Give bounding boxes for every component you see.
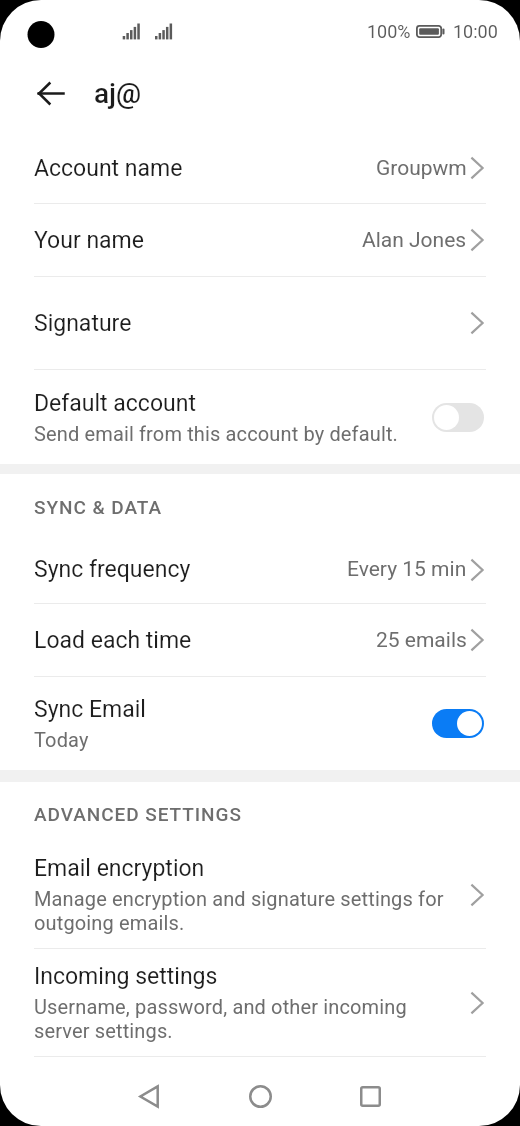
button[interactable]: Account name: [0, 133, 520, 203]
staticText: SYNC & DATA: [34, 496, 163, 518]
button[interactable]: Incoming settings: [0, 949, 520, 1056]
button[interactable]: Sync Email: [0, 677, 520, 770]
staticText: Groupwm: [376, 156, 467, 181]
button[interactable]: Your name: [0, 204, 520, 276]
button[interactable]: Sync frequency: [0, 536, 520, 603]
staticText: Send email from this account by default.: [34, 422, 398, 445]
button[interactable]: Recent apps: [339, 1066, 401, 1126]
staticText: Sync Email: [34, 696, 146, 723]
button[interactable]: Signature: [0, 277, 520, 369]
staticText: Every 15 min: [347, 557, 467, 582]
button[interactable]: Default account: [0, 370, 520, 464]
staticText: Today: [34, 728, 89, 751]
staticText: aj@: [94, 77, 142, 110]
staticText: Load each time: [34, 627, 192, 654]
staticText: Incoming settings: [34, 963, 218, 990]
button[interactable]: Load each time: [0, 604, 520, 676]
staticText: Sync frequency: [34, 556, 191, 583]
staticText: Email encryption: [34, 855, 205, 882]
staticText: 25 emails: [376, 628, 467, 653]
staticText: ADVANCED SETTINGS: [34, 803, 242, 825]
staticText: Account name: [34, 155, 183, 182]
staticText: Signature: [34, 310, 132, 337]
button[interactable]: Disabled toggle: [432, 403, 484, 432]
button[interactable]: Navigate up: [25, 67, 77, 119]
button[interactable]: Back: [118, 1066, 180, 1126]
staticText: Username, password, and other incoming s…: [34, 995, 447, 1043]
button[interactable]: Enabled toggle: [432, 709, 484, 738]
staticText: Alan Jones: [362, 228, 467, 253]
staticText: 100%: [367, 21, 411, 42]
staticText: Manage encryption and signature settings…: [34, 887, 447, 935]
staticText: Default account: [34, 390, 196, 417]
staticText: 10:00: [453, 21, 498, 42]
button[interactable]: Email encryption: [0, 842, 520, 948]
staticText: Your name: [34, 227, 144, 254]
button[interactable]: Home: [229, 1066, 291, 1126]
